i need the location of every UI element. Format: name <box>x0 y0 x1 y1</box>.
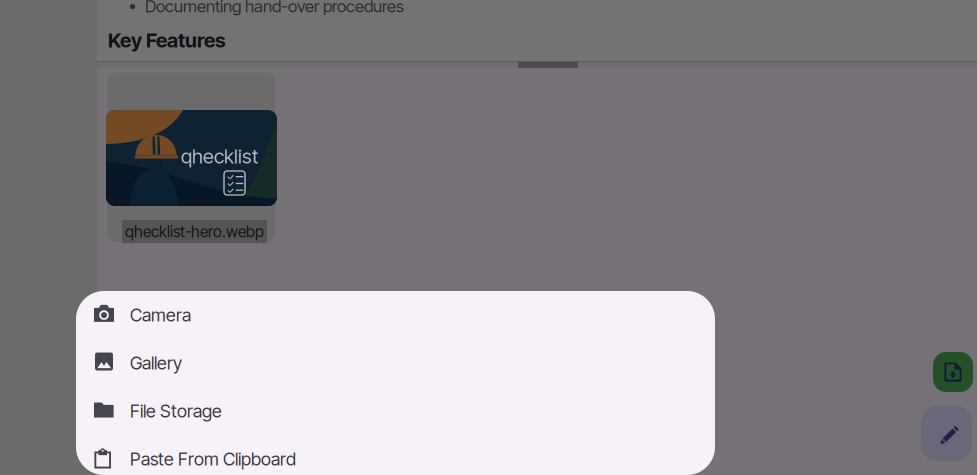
button[interactable]: Gallery <box>76 339 715 387</box>
staticText: Key Features <box>108 28 226 52</box>
button[interactable]: File Storage <box>76 387 715 435</box>
staticText: Camera <box>130 304 191 326</box>
button[interactable]: Compose <box>921 406 972 461</box>
staticText: Documenting hand-over procedures <box>145 0 404 16</box>
staticText: qhecklist <box>181 144 258 168</box>
button[interactable]: Paste From Clipboard <box>76 435 715 475</box>
staticText: qhecklist-hero.webp <box>125 222 264 241</box>
staticText: File Storage <box>130 400 222 422</box>
staticText: Gallery <box>130 352 182 374</box>
button[interactable]: Camera <box>76 291 715 339</box>
button[interactable]: Upload document <box>933 352 973 392</box>
staticText: Paste From Clipboard <box>130 448 296 470</box>
